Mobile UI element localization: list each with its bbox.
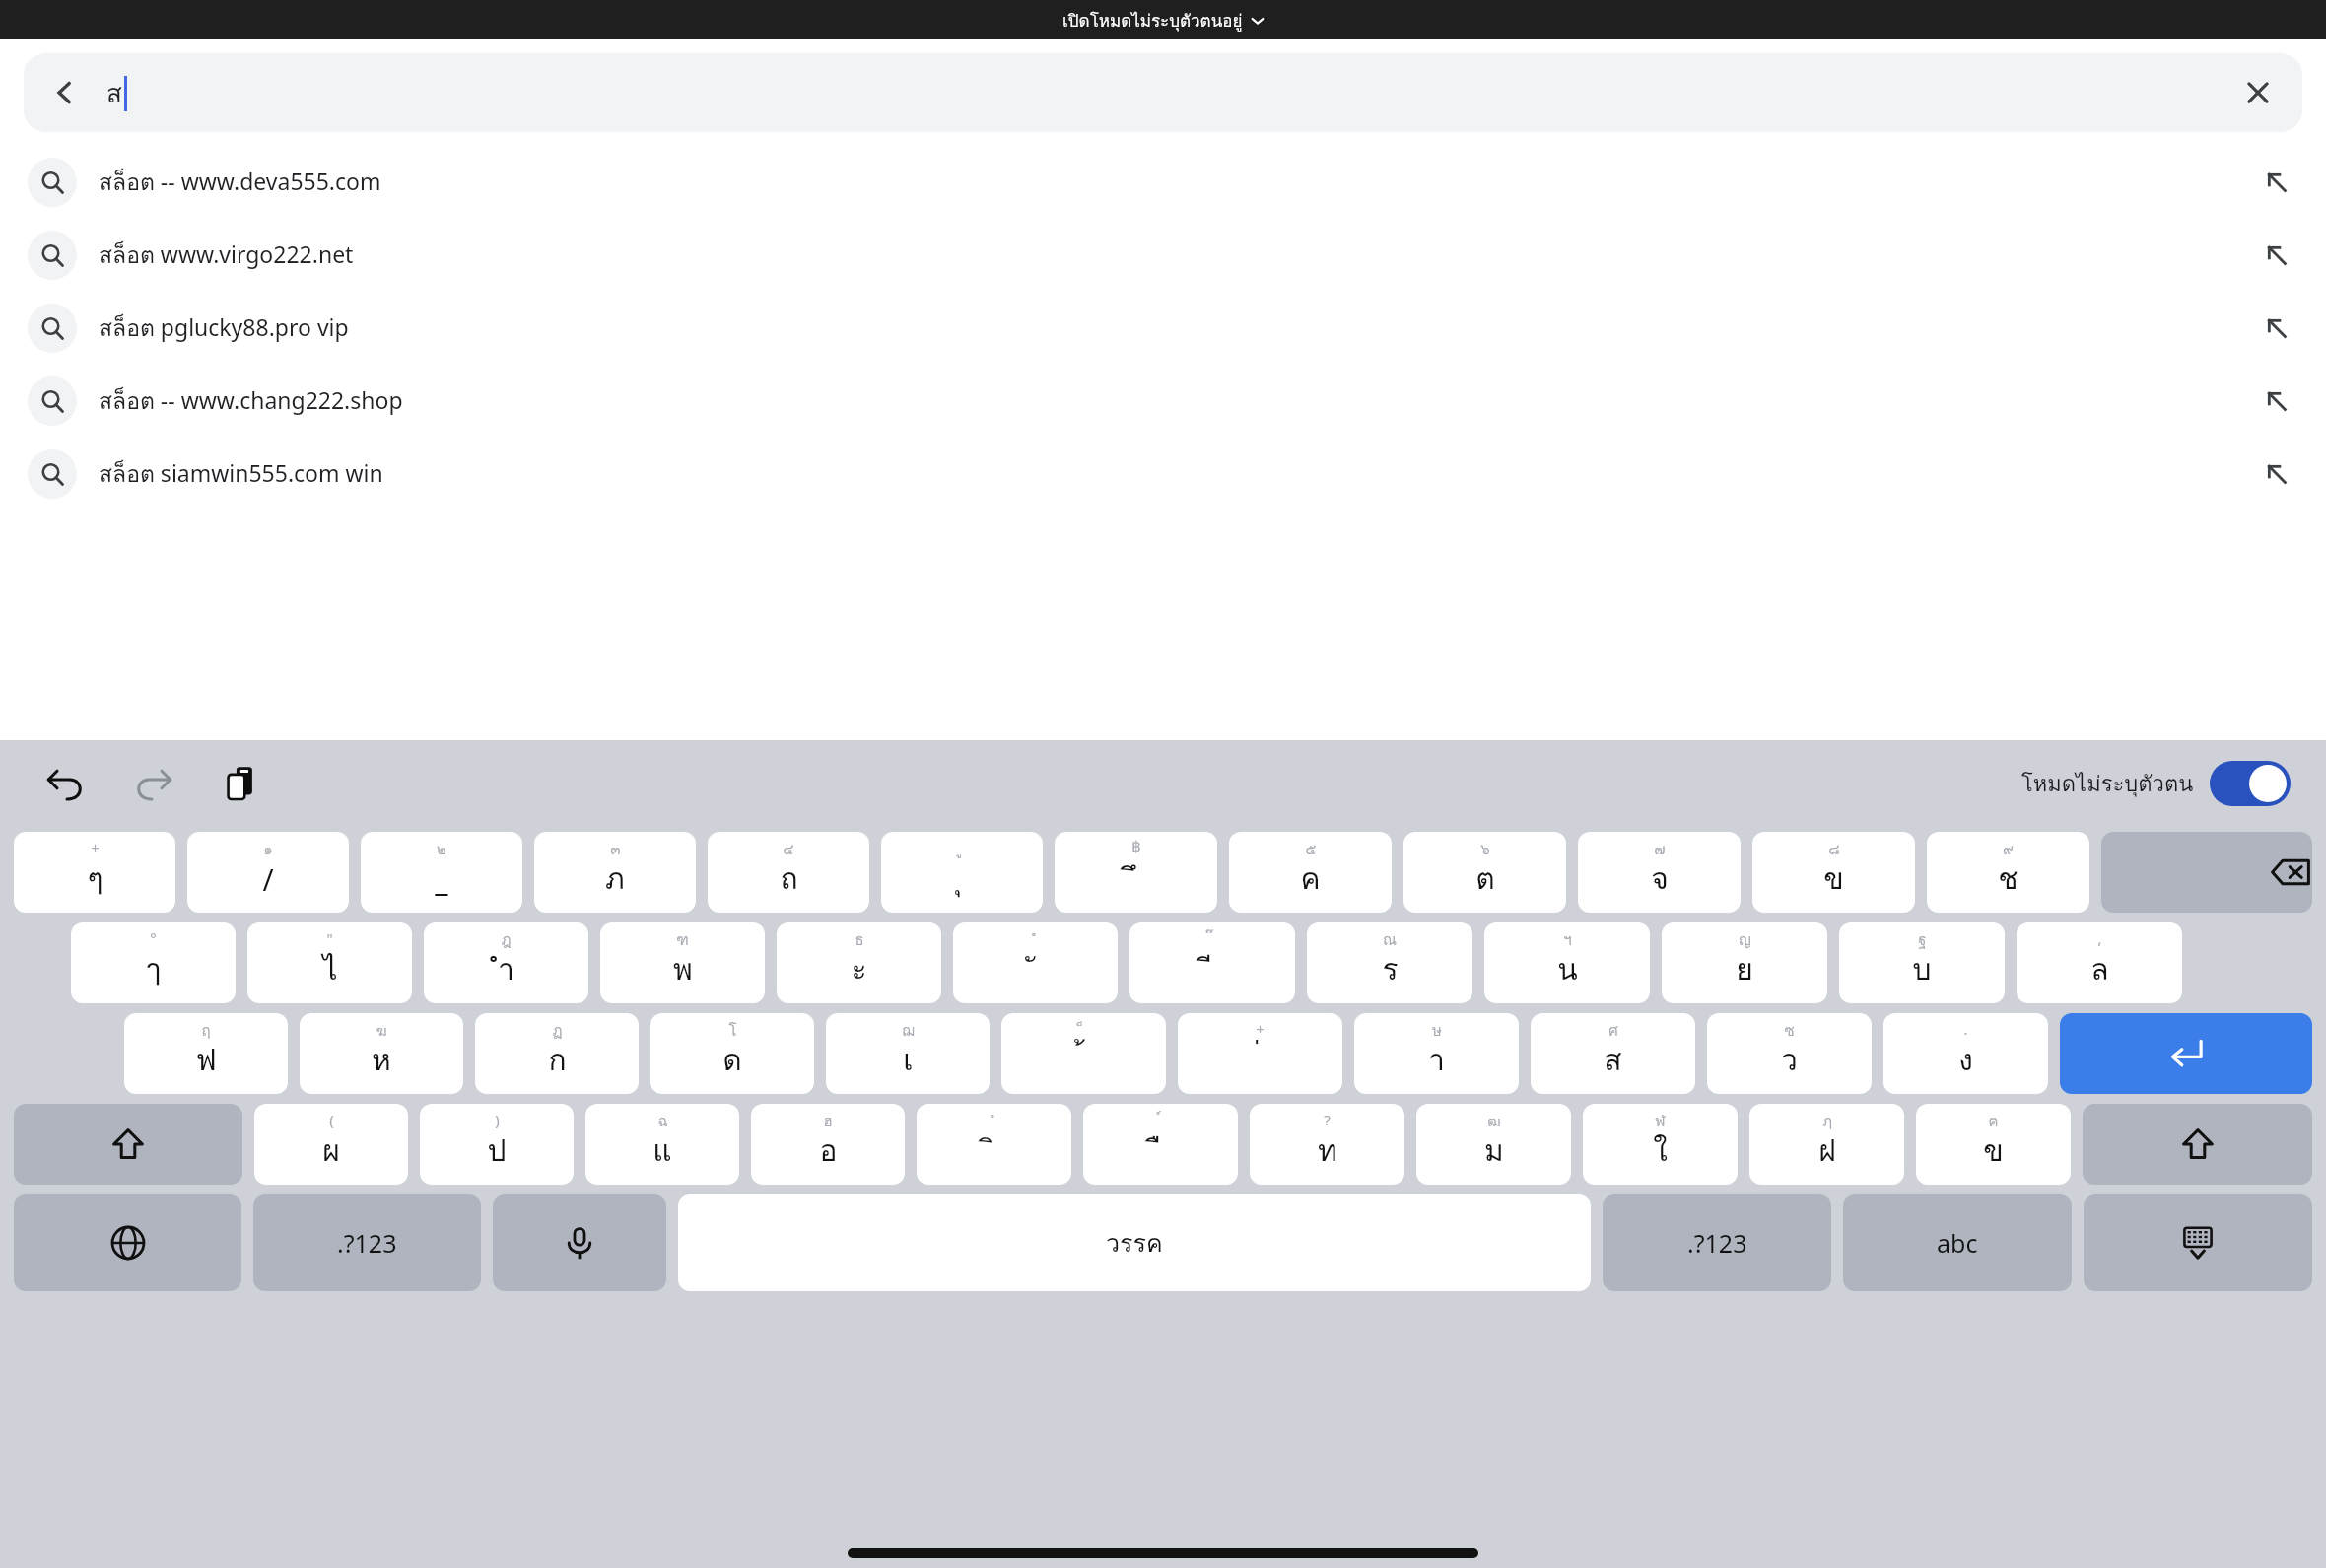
staticText: ๙ bbox=[2003, 838, 2014, 861]
button[interactable]: ฬ bbox=[1583, 1104, 1738, 1185]
button[interactable]: . bbox=[1883, 1013, 2048, 1094]
button[interactable]: ฿ bbox=[1055, 832, 1217, 913]
staticText: . bbox=[1963, 1019, 1968, 1039]
button[interactable]: ํ bbox=[953, 922, 1118, 1003]
button[interactable]: ฌ bbox=[826, 1013, 990, 1094]
button[interactable]: ๗ bbox=[1578, 832, 1741, 913]
button[interactable]: Back bbox=[24, 53, 106, 132]
button[interactable]: ( bbox=[254, 1104, 408, 1185]
button[interactable]: + bbox=[1178, 1013, 1342, 1094]
button[interactable]: ? bbox=[1250, 1104, 1404, 1185]
button[interactable]: Back bbox=[24, 53, 2302, 132]
button[interactable]: ฏ bbox=[475, 1013, 639, 1094]
button[interactable]: Voice input bbox=[493, 1194, 666, 1291]
button[interactable]: ศ bbox=[1531, 1013, 1695, 1094]
button[interactable]: ๊ bbox=[1129, 922, 1295, 1003]
staticText: ฟ bbox=[195, 1037, 217, 1084]
button[interactable]: ฅ bbox=[1916, 1104, 2071, 1185]
staticText: ฎ bbox=[501, 928, 512, 952]
button[interactable]: ฒ bbox=[1416, 1104, 1571, 1185]
button[interactable]: Symbols bbox=[1603, 1194, 1831, 1291]
button[interactable]: สล็อต -- www.deva555.com bbox=[0, 146, 2326, 219]
staticText: _ bbox=[435, 859, 448, 900]
button[interactable]: Symbols bbox=[253, 1194, 481, 1291]
button[interactable]: ๒ bbox=[361, 832, 522, 913]
button[interactable]: สล็อต siamwin555.com win bbox=[0, 438, 2326, 511]
staticText: ฿ bbox=[1131, 838, 1141, 854]
button[interactable]: ๑ bbox=[187, 832, 349, 913]
button[interactable]: ฎ bbox=[424, 922, 588, 1003]
button[interactable]: Insert suggestion bbox=[2227, 292, 2326, 365]
staticText: สล็อต -- www.chang222.shop bbox=[99, 383, 2227, 420]
staticText: " bbox=[326, 928, 333, 948]
staticText: ) bbox=[495, 1110, 500, 1129]
staticText: อ bbox=[819, 1127, 838, 1175]
staticText: ฌ bbox=[902, 1019, 915, 1043]
button[interactable]: โ bbox=[650, 1013, 814, 1094]
button[interactable]: ฯ bbox=[1484, 922, 1650, 1003]
staticText: า bbox=[1428, 1037, 1445, 1084]
button[interactable]: Insert suggestion bbox=[2227, 146, 2326, 219]
button[interactable]: ํ bbox=[917, 1104, 1071, 1185]
button[interactable]: Backspace bbox=[2101, 832, 2312, 913]
staticText: วรรค bbox=[1106, 1223, 1163, 1262]
staticText: สล็อต pglucky88.pro vip bbox=[99, 310, 2227, 347]
button[interactable]: ซ bbox=[1707, 1013, 1872, 1094]
button[interactable]: ู bbox=[881, 832, 1043, 913]
button[interactable]: โหมดไม่ระบุตัวตน bbox=[2016, 755, 2296, 812]
staticText: บ bbox=[1912, 946, 1932, 993]
button[interactable]: + bbox=[14, 832, 175, 913]
button[interactable]: ) bbox=[420, 1104, 574, 1185]
button[interactable]: Shift bbox=[14, 1104, 242, 1185]
button[interactable]: ๔ bbox=[708, 832, 869, 913]
button[interactable]: Change language bbox=[14, 1194, 241, 1291]
button[interactable]: สล็อต -- www.chang222.shop bbox=[0, 365, 2326, 438]
button[interactable]: Undo bbox=[34, 752, 97, 815]
button[interactable]: ็ bbox=[1001, 1013, 1166, 1094]
button[interactable]: ๙ bbox=[1927, 832, 2089, 913]
button[interactable]: เปิดโหมดไม่ระบุตัวตนอยู่ bbox=[1055, 5, 1272, 35]
staticText: ° bbox=[150, 928, 157, 948]
button[interactable]: ฐ bbox=[1839, 922, 2005, 1003]
button[interactable]: Insert suggestion bbox=[2227, 219, 2326, 292]
staticText: ซ bbox=[1784, 1019, 1795, 1043]
button[interactable]: ๘ bbox=[1752, 832, 1915, 913]
button[interactable]: Hide keyboard bbox=[2084, 1194, 2312, 1291]
button[interactable]: " bbox=[247, 922, 412, 1003]
button[interactable]: สล็อต pglucky88.pro vip bbox=[0, 292, 2326, 365]
staticText: ๔ bbox=[783, 838, 794, 861]
button[interactable]: ๕ bbox=[1229, 832, 1392, 913]
staticText: สล็อต www.virgo222.net bbox=[99, 238, 2227, 274]
button[interactable]: Clear bbox=[2214, 53, 2302, 132]
button[interactable]: ฤ bbox=[124, 1013, 288, 1094]
button[interactable]: Clipboard bbox=[211, 752, 274, 815]
staticText: ศ bbox=[1608, 1019, 1618, 1043]
button[interactable]: Shift bbox=[2083, 1104, 2312, 1185]
button[interactable]: ธ bbox=[777, 922, 941, 1003]
staticText: ฦ bbox=[1822, 1110, 1832, 1133]
button[interactable]: ฦ bbox=[1749, 1104, 1904, 1185]
button[interactable]: Redo bbox=[122, 752, 185, 815]
button[interactable]: ° bbox=[71, 922, 236, 1003]
button[interactable]: ษ bbox=[1354, 1013, 1519, 1094]
button[interactable]: ฮ bbox=[751, 1104, 905, 1185]
button[interactable]: Insert suggestion bbox=[2227, 438, 2326, 511]
staticText: โ bbox=[728, 1019, 737, 1043]
button[interactable]: ๖ bbox=[1403, 832, 1566, 913]
button[interactable]: , bbox=[2017, 922, 2182, 1003]
button[interactable]: ณ bbox=[1307, 922, 1472, 1003]
button[interactable]: ๓ bbox=[534, 832, 696, 913]
button[interactable]: Latin letters bbox=[1843, 1194, 2072, 1291]
button[interactable]: ญ bbox=[1662, 922, 1827, 1003]
staticText: แ bbox=[652, 1127, 672, 1175]
button[interactable]: วรรค bbox=[678, 1194, 1591, 1291]
button[interactable]: สล็อต www.virgo222.net bbox=[0, 219, 2326, 292]
button[interactable]: ฑ bbox=[600, 922, 765, 1003]
button[interactable]: ฉ bbox=[585, 1104, 739, 1185]
staticText: ว bbox=[1781, 1037, 1798, 1084]
button[interactable]: ์ bbox=[1083, 1104, 1238, 1185]
staticText: .?123 bbox=[337, 1226, 397, 1260]
button[interactable]: Enter bbox=[2060, 1013, 2312, 1094]
button[interactable]: ฆ bbox=[300, 1013, 463, 1094]
button[interactable]: Insert suggestion bbox=[2227, 365, 2326, 438]
